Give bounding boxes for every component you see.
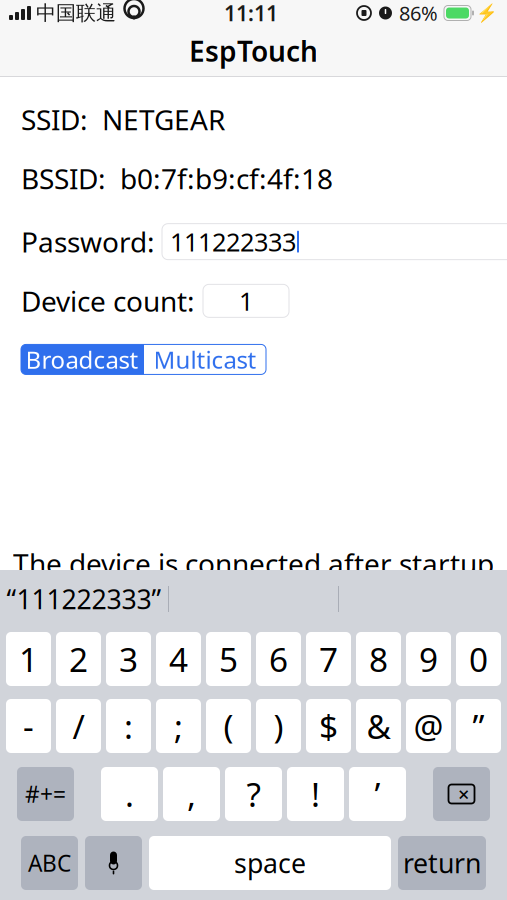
staticText: &: [366, 704, 390, 748]
staticText: ): [273, 704, 283, 748]
button[interactable]: 4: [156, 632, 201, 686]
staticText: ABC: [28, 848, 71, 878]
button[interactable]: $: [306, 699, 351, 753]
button[interactable]: 6: [256, 632, 301, 686]
button[interactable]: :: [106, 699, 151, 753]
staticText: Password:: [21, 223, 155, 260]
staticText: ;: [174, 704, 183, 748]
staticText: The device is connected after startup: [13, 545, 494, 582]
staticText: EspTouch: [189, 32, 318, 70]
staticText: 1: [19, 637, 38, 681]
staticText: ’: [374, 772, 380, 816]
staticText: 1: [239, 284, 253, 318]
button[interactable]: 1: [6, 632, 51, 686]
button[interactable]: “111222333”: [0, 570, 168, 628]
button[interactable]: /: [56, 699, 101, 753]
staticText: .: [125, 772, 134, 816]
staticText: 7: [319, 637, 338, 681]
staticText: 3: [119, 637, 138, 681]
button[interactable]: 7: [306, 632, 351, 686]
button[interactable]: 0: [456, 632, 501, 686]
button[interactable]: .: [101, 767, 158, 821]
staticText: /: [72, 704, 84, 748]
button[interactable]: (: [206, 699, 251, 753]
staticText: 5: [219, 637, 238, 681]
button[interactable]: Broadcast: [21, 344, 143, 374]
button[interactable]: ”: [456, 699, 501, 753]
staticText: Multicast: [153, 343, 256, 375]
button[interactable]: &: [356, 699, 401, 753]
button[interactable]: ): [256, 699, 301, 753]
staticText: 2: [69, 637, 88, 681]
staticText: ⚡: [476, 3, 498, 23]
staticText: ,: [187, 772, 196, 816]
button[interactable]: 111222333: [162, 224, 507, 260]
staticText: 111222333: [170, 225, 296, 258]
staticText: space: [234, 845, 306, 881]
staticText: SSID: NETGEAR: [21, 101, 225, 138]
button[interactable]: 8: [356, 632, 401, 686]
staticText: ?: [246, 772, 260, 816]
button[interactable]: Delete: [433, 767, 490, 821]
staticText: -: [23, 704, 34, 748]
button[interactable]: ;: [156, 699, 201, 753]
staticText: 86%: [399, 0, 438, 26]
staticText: return: [403, 845, 481, 881]
button[interactable]: Multicast: [144, 344, 266, 374]
staticText: 6: [269, 637, 288, 681]
staticText: “111222333”: [6, 581, 161, 617]
staticText: 0: [469, 637, 488, 681]
staticText: !: [311, 772, 320, 816]
button[interactable]: 1: [203, 284, 289, 317]
staticText: $: [319, 704, 338, 748]
staticText: @: [413, 704, 443, 748]
button[interactable]: return: [398, 836, 486, 890]
button[interactable]: 3: [106, 632, 151, 686]
button[interactable]: 5: [206, 632, 251, 686]
staticText: 9: [419, 637, 438, 681]
button[interactable]: #+=: [17, 767, 74, 821]
staticText: ”: [472, 704, 484, 748]
button[interactable]: @: [406, 699, 451, 753]
staticText: 11:11: [224, 0, 278, 27]
staticText: 4: [169, 637, 188, 681]
button[interactable]: 2: [56, 632, 101, 686]
button[interactable]: ?: [225, 767, 282, 821]
button[interactable]: ABC: [21, 836, 78, 890]
staticText: :: [124, 704, 133, 748]
button[interactable]: Dictation: [85, 836, 142, 890]
button[interactable]: space: [149, 836, 391, 890]
button[interactable]: !: [287, 767, 344, 821]
staticText: 中国联通: [36, 1, 116, 25]
button[interactable]: ,: [163, 767, 220, 821]
staticText: ×: [458, 781, 469, 807]
button[interactable]: 9: [406, 632, 451, 686]
staticText: Broadcast: [25, 343, 138, 375]
staticText: #+=: [25, 779, 66, 809]
staticText: Device count:: [21, 282, 195, 319]
staticText: (: [223, 704, 233, 748]
button[interactable]: -: [6, 699, 51, 753]
button[interactable]: ’: [349, 767, 406, 821]
staticText: BSSID: b0:7f:b9:cf:4f:18: [21, 160, 333, 197]
staticText: 8: [369, 637, 388, 681]
